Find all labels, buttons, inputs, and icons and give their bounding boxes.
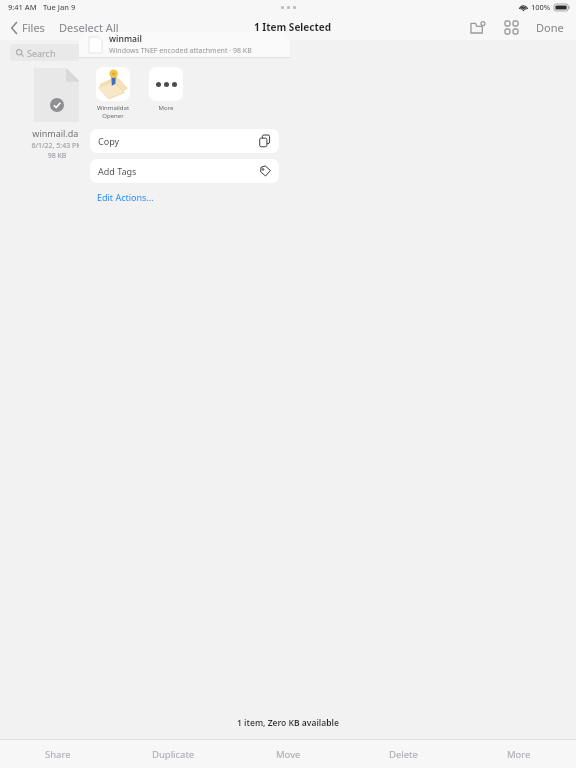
staticText: Move [276,748,301,761]
staticText: 100% [531,2,551,12]
staticText: Copy [98,135,120,147]
staticText: Deselect All [59,20,119,35]
button[interactable]: More [461,740,576,768]
staticText: winmail.dat [22,127,92,139]
staticText: 9:41 AM [8,2,37,12]
button[interactable]: New Folder [466,17,489,38]
staticText: More [144,104,188,112]
button[interactable]: Deselect All [57,17,121,38]
staticText: Add Tags [98,165,137,177]
button[interactable]: winmail.dat [22,68,92,161]
button[interactable]: Duplicate [116,740,231,768]
button[interactable]: Move [231,740,346,768]
staticText: Files [22,20,45,35]
button[interactable]: Add Tags [90,159,279,183]
staticText: Tue Jan 9 [43,2,76,12]
staticText: Windows TNEF encoded attachment · 98 KB [109,46,252,56]
button[interactable]: Copy [90,129,279,153]
button[interactable]: Grid View [501,17,522,38]
staticText: 1 item, Zero KB available [237,717,339,729]
staticText: Search [27,47,56,59]
staticText: Edit Actions… [97,191,154,203]
staticText: Done [536,20,564,35]
button[interactable]: Search [10,44,122,61]
staticText: 6/1/22, 5:43 PM [22,141,92,151]
button[interactable]: Done [534,17,566,38]
button[interactable]: Edit Actions… [97,191,154,203]
button[interactable]: Winmaildat [91,67,135,120]
staticText: Delete [389,748,418,761]
staticText: More [507,748,531,761]
button[interactable]: Delete [346,740,461,768]
staticText: Winmaildat [91,104,135,112]
staticText: winmail [109,33,142,45]
button[interactable]: Files [9,17,47,38]
staticText: Opener [91,112,135,120]
staticText: 98 KB [22,151,92,161]
staticText: 1 Item Selected [254,20,332,34]
button[interactable]: Share [0,740,116,768]
button[interactable]: More [144,67,188,112]
staticText: Share [45,748,71,761]
staticText: Duplicate [152,748,195,761]
